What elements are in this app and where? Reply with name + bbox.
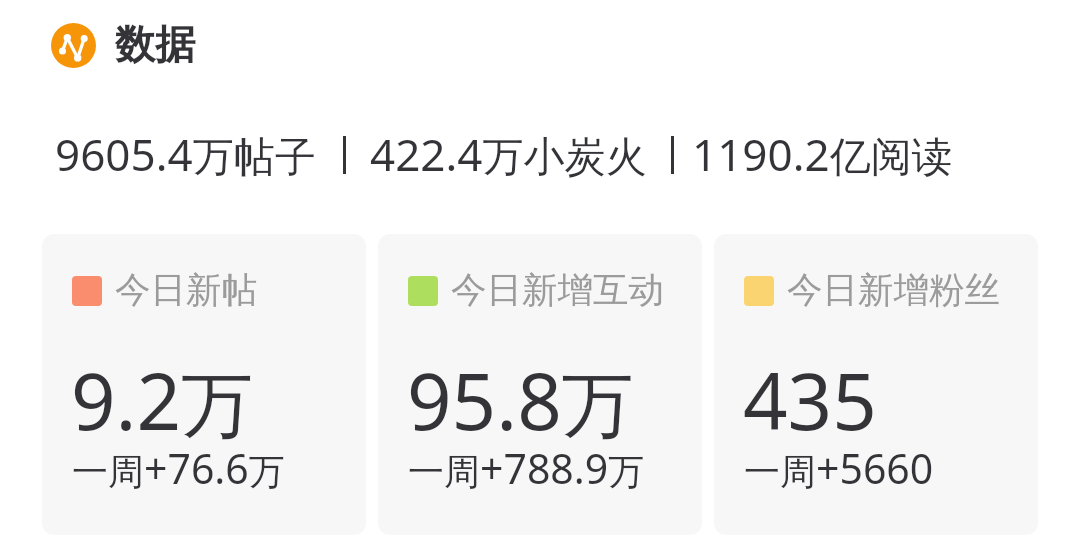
staticText: 435 — [743, 347, 877, 453]
staticText: 9605.4万帖子 — [55, 124, 316, 184]
button[interactable]: 9605.4万帖子 — [55, 124, 953, 184]
staticText: 今日新增粉丝 — [787, 268, 1000, 313]
staticText: 9.2万 — [71, 347, 254, 453]
staticText: 1190.2亿阅读 — [692, 124, 953, 184]
staticText: 今日新增互动 — [451, 268, 664, 313]
button[interactable]: 今日新帖 — [42, 234, 366, 535]
other: Data section logo — [51, 23, 96, 68]
staticText: 一周+76.6万 — [72, 440, 285, 496]
staticText: 一周+5660 — [744, 440, 934, 496]
button[interactable]: 今日新增粉丝 — [714, 234, 1038, 535]
staticText: 今日新帖 — [115, 268, 257, 313]
staticText: 95.8万 — [407, 347, 634, 453]
button[interactable]: 今日新增互动 — [378, 234, 702, 535]
button[interactable]: Data section logo — [51, 8, 195, 83]
staticText: 422.4万小炭火 — [370, 124, 647, 184]
staticText: 数据 — [115, 19, 195, 69]
staticText: 一周+788.9万 — [408, 440, 645, 496]
